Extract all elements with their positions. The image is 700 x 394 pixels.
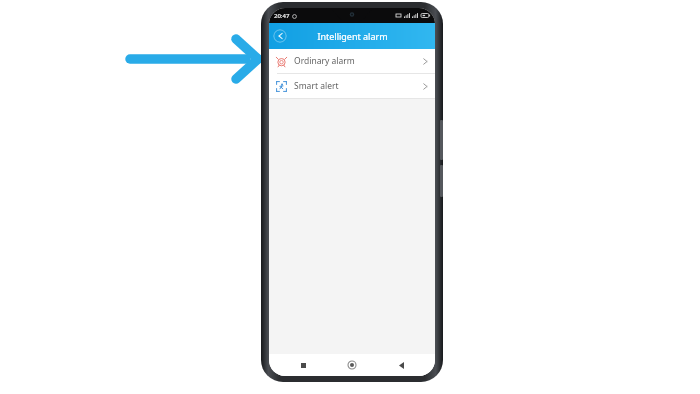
button[interactable]: Smart alert	[269, 74, 435, 98]
button[interactable]: Back	[273, 29, 287, 43]
staticText: Intelligent alarm	[317, 30, 388, 42]
button[interactable]: Home	[344, 357, 360, 373]
button[interactable]: Ordinary alarm	[269, 49, 435, 73]
staticText: 20:47	[274, 12, 290, 20]
button[interactable]: Back	[393, 357, 409, 373]
staticText: Smart alert	[294, 80, 423, 92]
staticText: Ordinary alarm	[294, 55, 423, 67]
button[interactable]: Recent apps	[295, 357, 311, 373]
